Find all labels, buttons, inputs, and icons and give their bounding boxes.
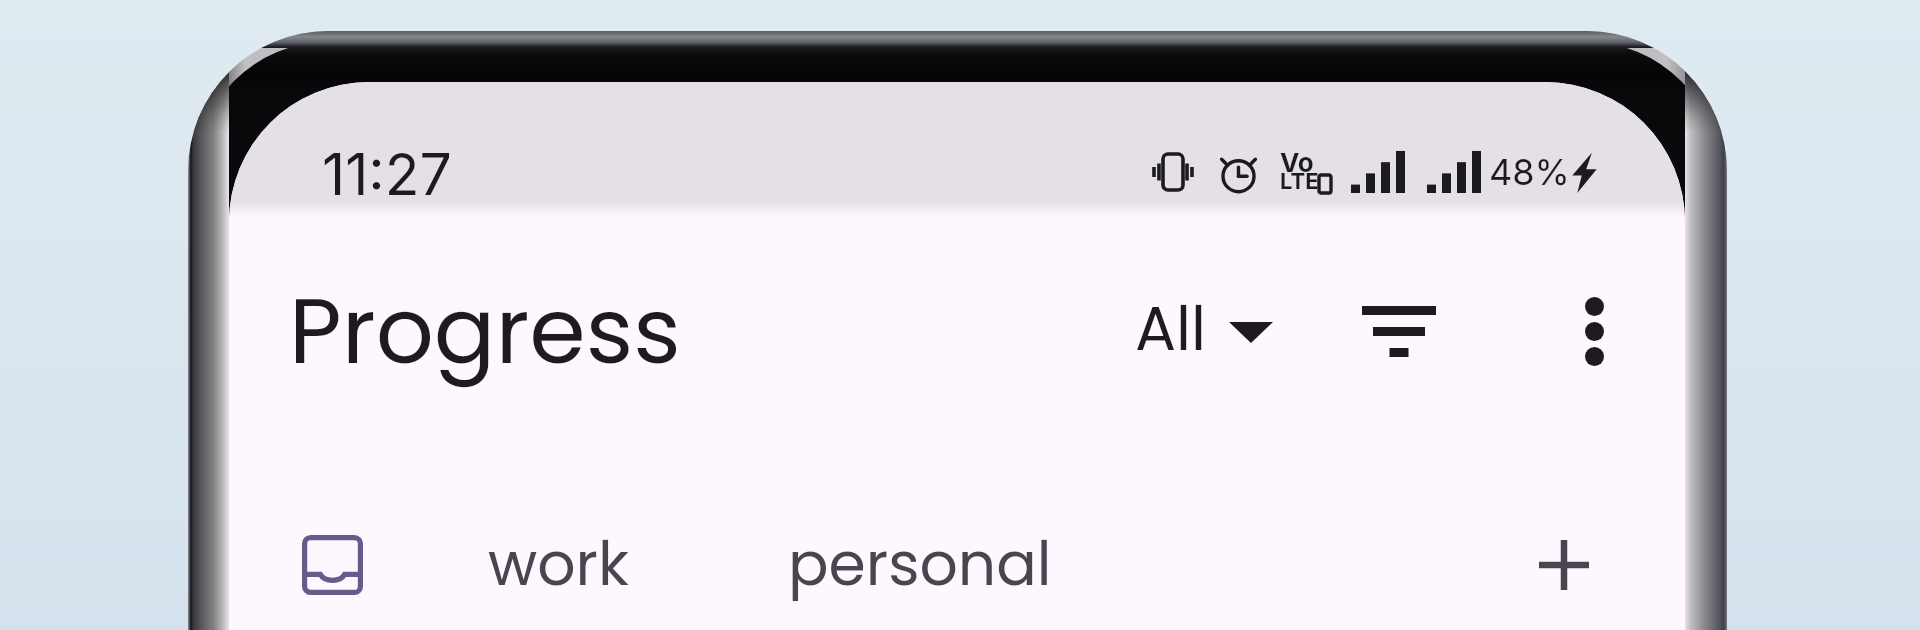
button[interactable]: More options xyxy=(1544,281,1644,381)
button[interactable]: All xyxy=(1118,272,1290,385)
staticText: 48% xyxy=(1489,150,1570,194)
staticText: LTE xyxy=(1280,168,1319,195)
button[interactable]: Sort xyxy=(1349,281,1449,381)
button[interactable]: Inbox xyxy=(282,515,382,615)
staticText: 11:27 xyxy=(322,140,452,209)
staticText: Vo xyxy=(1280,147,1314,178)
staticText: All xyxy=(1135,286,1207,371)
button[interactable]: work xyxy=(474,508,643,620)
button[interactable]: personal xyxy=(774,508,1066,620)
staticText: Progress xyxy=(289,267,681,394)
button[interactable]: Add xyxy=(1514,515,1614,615)
